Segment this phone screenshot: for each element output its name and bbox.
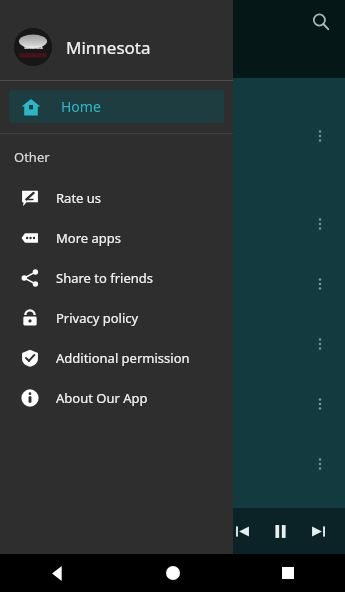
staticText: Share to friends: [56, 269, 154, 287]
staticText: Police and EMS: [16, 215, 116, 234]
staticText: About Our App: [56, 389, 148, 407]
button[interactable]: Share to friends: [0, 258, 233, 298]
button[interactable]: About Our App: [0, 378, 233, 418]
button[interactable]: Sheriff, Fire and: [0, 78, 345, 194]
button[interactable]: Previous: [223, 512, 261, 550]
button[interactable]: More options: [305, 389, 335, 419]
staticText: More apps: [56, 229, 121, 247]
button[interactable]: Pause: [261, 512, 299, 550]
button[interactable]: Recents: [230, 554, 345, 592]
staticText: Privacy policy: [56, 309, 139, 327]
staticText: MINNESOTA: [24, 46, 43, 50]
staticText: Area and County: [16, 335, 126, 354]
button[interactable]: Back: [0, 554, 115, 592]
button[interactable]: Search: [303, 4, 339, 40]
button[interactable]: More apps: [0, 218, 233, 258]
button[interactable]: More options: [305, 121, 335, 151]
button[interactable]: MINNESOTA: [0, 18, 233, 76]
staticText: Additional permission: [56, 349, 190, 367]
button[interactable]: More options: [305, 449, 335, 479]
button[interactable]: More options: [305, 329, 335, 359]
button[interactable]: Next: [299, 512, 337, 550]
button[interactable]: Rate us: [0, 178, 233, 218]
button[interactable]: Privacy policy: [0, 298, 233, 338]
button[interactable]: Area and County: [0, 314, 345, 374]
staticText: Sheriff, Fire and: [16, 127, 120, 146]
button[interactable]: More options: [305, 209, 335, 239]
staticText: Rate us: [56, 189, 102, 207]
staticText: Minnesota: [66, 36, 151, 59]
button[interactable]: Police and EMS: [0, 194, 345, 254]
button[interactable]: Dispatch: [0, 254, 345, 314]
button[interactable]: Home: [115, 554, 230, 592]
button[interactable]: Home: [9, 90, 224, 123]
button[interactable]: Additional permission: [0, 338, 233, 378]
staticText: Favorite: [148, 52, 198, 70]
staticText: Safety: [16, 395, 57, 414]
staticText: Other: [14, 148, 50, 166]
button[interactable]: Safety: [0, 374, 345, 434]
staticText: Dispatch: [16, 275, 74, 294]
button[interactable]: More options: [305, 269, 335, 299]
button[interactable]: EMS and PW: [0, 434, 345, 494]
staticText: Home: [61, 97, 101, 116]
